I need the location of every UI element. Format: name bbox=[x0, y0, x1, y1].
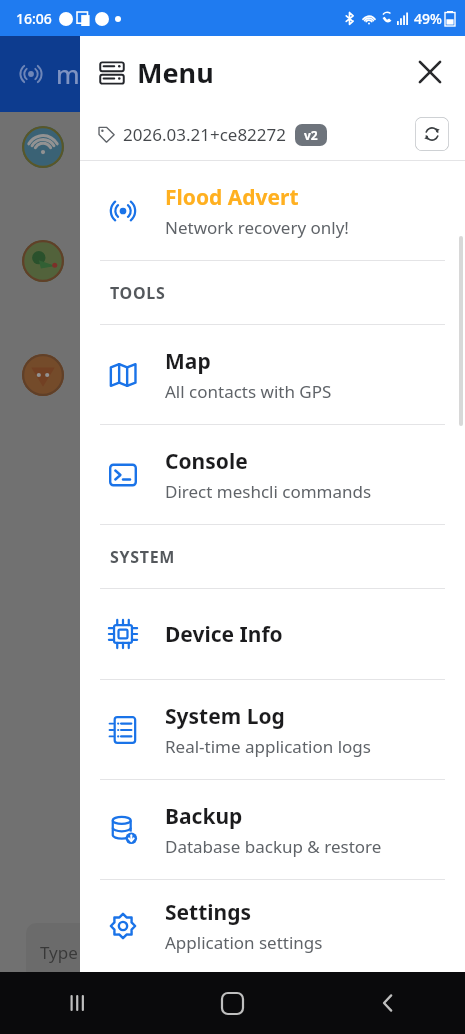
button[interactable]: Home bbox=[155, 972, 310, 1034]
staticText: Menu bbox=[137, 54, 214, 91]
staticText: Device Info bbox=[165, 620, 283, 649]
staticText: Type a message bbox=[40, 941, 168, 964]
staticText: Map bbox=[165, 347, 211, 376]
button[interactable]: Device Info bbox=[80, 589, 465, 679]
staticText: SYSTEM bbox=[110, 546, 176, 568]
button[interactable]: Recent apps bbox=[0, 972, 155, 1034]
staticText: Direct meshcli commands bbox=[165, 480, 372, 503]
staticText: Backup bbox=[165, 802, 243, 831]
button[interactable]: Settings bbox=[80, 880, 465, 972]
staticText: Application settings bbox=[165, 931, 323, 954]
staticText: v2 bbox=[304, 127, 318, 143]
button[interactable]: Console bbox=[80, 425, 465, 524]
staticText: All contacts with GPS bbox=[165, 380, 332, 403]
button[interactable]: Back bbox=[310, 972, 465, 1034]
staticText: mo bbox=[56, 57, 95, 91]
staticText: Connected bbox=[34, 1008, 105, 1027]
staticText: 16:06 bbox=[16, 9, 52, 28]
button[interactable]: Backup bbox=[80, 780, 465, 879]
staticText: Database backup & restore bbox=[165, 835, 382, 858]
staticText: Network recovery only! bbox=[165, 216, 349, 239]
staticText: TOOLS bbox=[110, 282, 166, 304]
staticText: Real-time application logs bbox=[165, 735, 371, 758]
button[interactable]: Refresh bbox=[415, 117, 449, 151]
staticText: 2026.03.21+ce82272 bbox=[123, 123, 286, 146]
staticText: Settings bbox=[165, 898, 252, 927]
staticText: System Log bbox=[165, 702, 285, 731]
staticText: Console bbox=[165, 447, 248, 476]
button[interactable]: Flood Advert bbox=[80, 161, 465, 260]
staticText: 49% bbox=[414, 9, 442, 28]
button[interactable]: Map bbox=[80, 325, 465, 424]
button[interactable]: System Log bbox=[80, 680, 465, 779]
staticText: Flood Advert bbox=[165, 183, 299, 212]
button[interactable]: Close menu bbox=[407, 49, 453, 95]
